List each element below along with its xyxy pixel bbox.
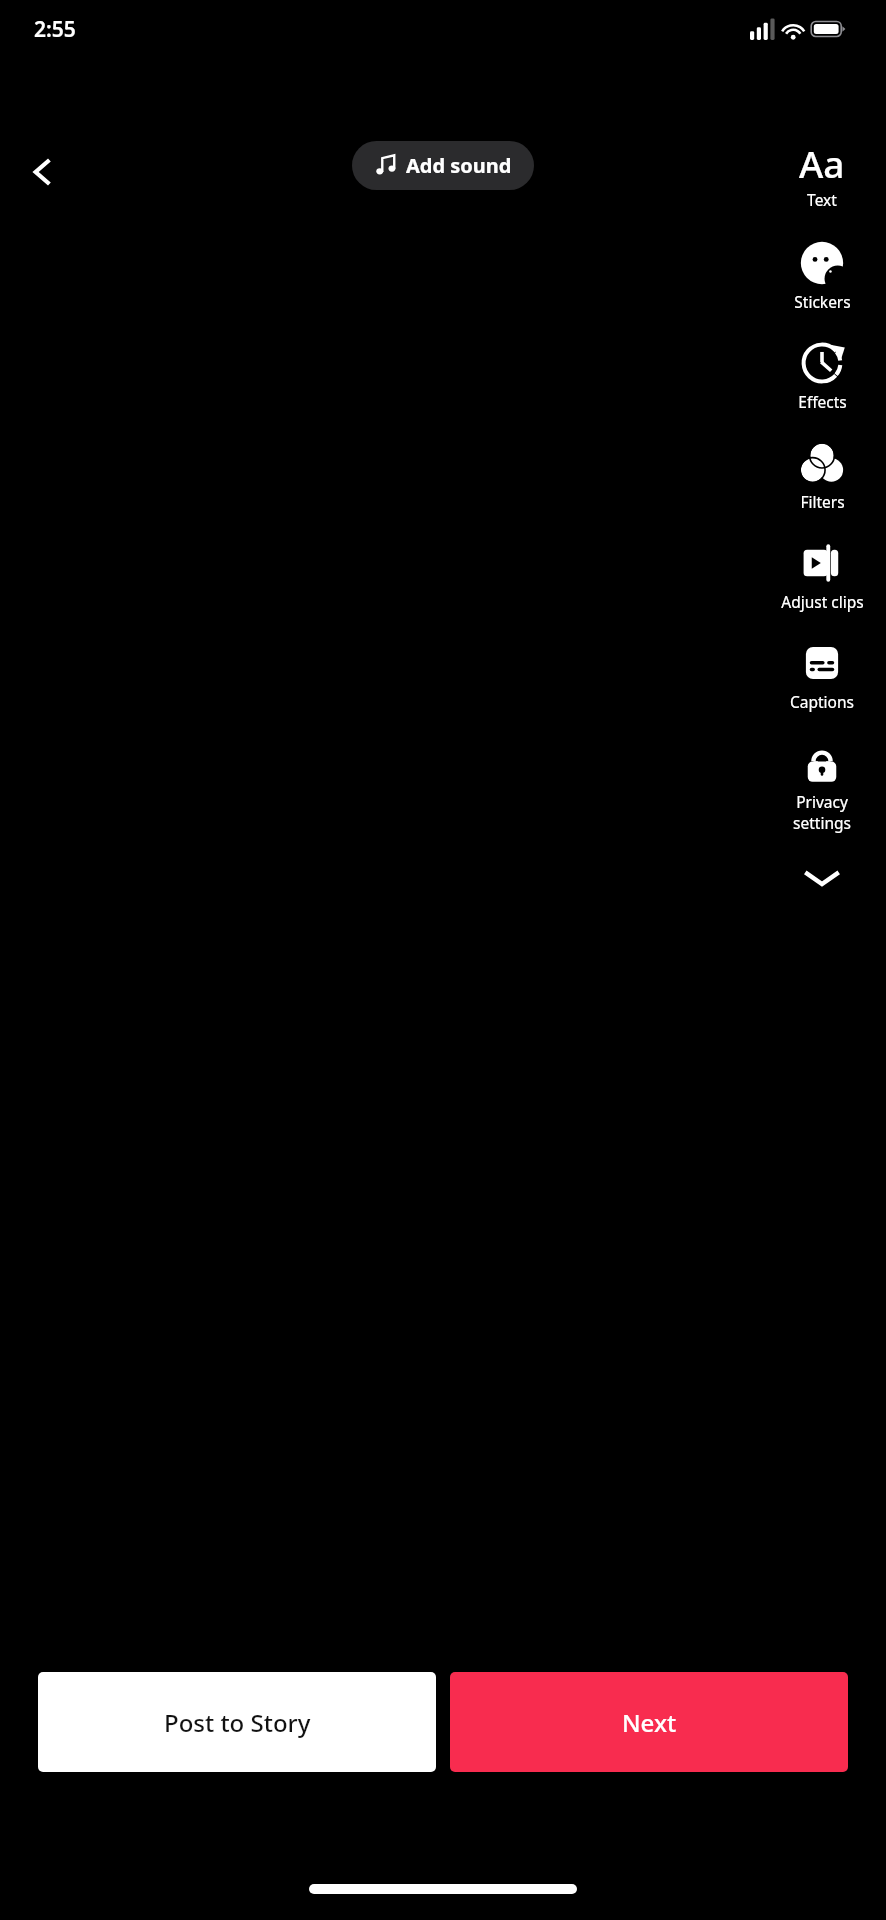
staticText: Aa xyxy=(799,138,845,186)
other: Filters xyxy=(799,440,845,486)
staticText: Privacy xyxy=(796,791,848,812)
button[interactable]: Adjust clips xyxy=(758,540,886,612)
other: Stickers xyxy=(799,240,845,286)
staticText: settings xyxy=(793,812,851,833)
other: Captions xyxy=(799,640,845,686)
staticText: Text xyxy=(807,189,837,210)
button[interactable]: Aa xyxy=(758,138,886,210)
other: Adjust clips xyxy=(799,540,845,586)
button[interactable]: Stickers xyxy=(758,240,886,312)
staticText: Add sound xyxy=(406,152,512,179)
other: Effects xyxy=(799,340,845,386)
button[interactable]: Privacy settings xyxy=(758,740,886,833)
staticText: Filters xyxy=(800,491,845,512)
button[interactable]: Effects xyxy=(758,340,886,412)
other: Privacy settings xyxy=(799,740,845,786)
button[interactable]: Add sound xyxy=(352,141,534,190)
button[interactable]: Back xyxy=(12,140,76,204)
staticText: Stickers xyxy=(794,291,851,312)
staticText: Adjust clips xyxy=(781,591,864,612)
button[interactable]: Captions xyxy=(758,640,886,712)
button[interactable]: Next xyxy=(450,1672,848,1772)
staticText: 2:55 xyxy=(34,15,76,44)
staticText: Effects xyxy=(798,391,847,412)
staticText: Post to Story xyxy=(164,1706,311,1739)
staticText: Next xyxy=(622,1706,677,1739)
button[interactable]: Collapse tools xyxy=(790,851,854,905)
button[interactable]: Post to Story xyxy=(38,1672,436,1772)
button[interactable]: Filters xyxy=(758,440,886,512)
staticText: Captions xyxy=(790,691,854,712)
